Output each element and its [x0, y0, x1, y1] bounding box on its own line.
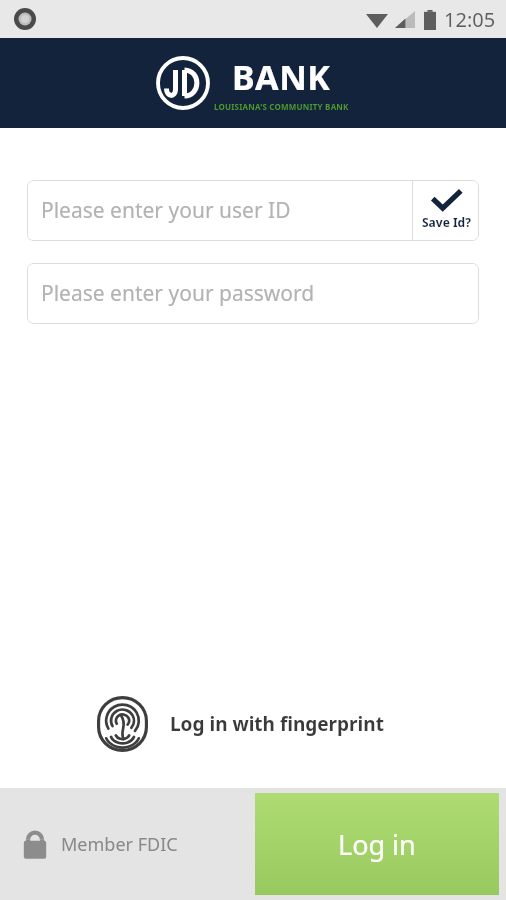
staticText: Member FDIC — [61, 832, 178, 857]
button[interactable]: Log in with fingerprint — [97, 696, 384, 752]
staticText: Log in with fingerprint — [170, 711, 384, 737]
staticText: BANK — [232, 54, 331, 100]
staticText: Log in — [338, 826, 416, 863]
button[interactable]: Please enter your password — [27, 263, 479, 324]
button[interactable]: Please enter your user ID — [27, 180, 412, 241]
button[interactable]: Log in — [255, 793, 499, 895]
staticText: Save Id? — [422, 214, 471, 230]
staticText: Please enter your user ID — [41, 196, 291, 225]
button[interactable]: Member FDIC — [22, 828, 178, 860]
button[interactable]: Save Id — [413, 180, 479, 241]
staticText: 12:05 — [444, 6, 496, 33]
staticText: Please enter your password — [41, 279, 315, 308]
staticText: LOUISIANA'S COMMUNITY BANK — [214, 101, 349, 112]
